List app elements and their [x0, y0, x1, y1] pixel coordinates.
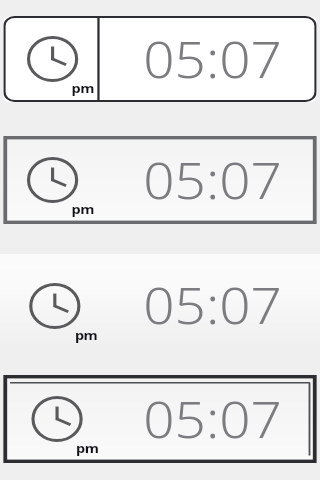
- button[interactable]: Set time 05:07 pm: [3, 16, 317, 102]
- staticText: pm: [76, 439, 98, 457]
- staticText: pm: [75, 326, 97, 344]
- button[interactable]: Set time 05:07 pm: [0, 254, 320, 347]
- staticText: 05:07: [143, 272, 282, 339]
- button[interactable]: Set time 05:07 pm: [3, 136, 317, 224]
- staticText: pm: [72, 79, 94, 97]
- staticText: 05:07: [143, 147, 282, 214]
- staticText: 05:07: [143, 386, 282, 453]
- staticText: 05:07: [143, 26, 282, 93]
- button[interactable]: Set time 05:07 pm: [3, 375, 317, 463]
- staticText: pm: [72, 200, 94, 218]
